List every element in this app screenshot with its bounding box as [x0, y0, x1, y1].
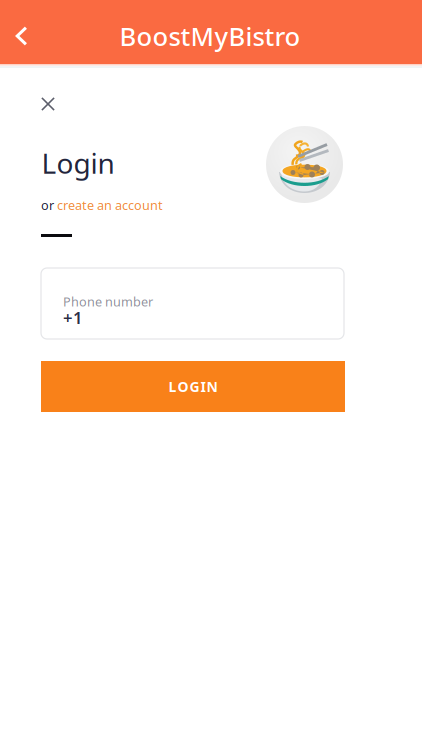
- staticText: Phone number: [63, 293, 153, 310]
- staticText: +1: [63, 306, 83, 329]
- button[interactable]: Phone number: [41, 268, 344, 339]
- staticText: create an account: [57, 196, 163, 214]
- button[interactable]: create an account: [57, 196, 163, 214]
- button[interactable]: Back: [0, 8, 43, 64]
- staticText: or: [41, 196, 57, 214]
- staticText: BoostMyBistro: [119, 19, 300, 53]
- staticText: Login: [41, 144, 114, 182]
- staticText: L O G I N: [168, 377, 217, 396]
- button[interactable]: Close: [30, 86, 66, 122]
- button[interactable]: L O G I N: [41, 361, 345, 412]
